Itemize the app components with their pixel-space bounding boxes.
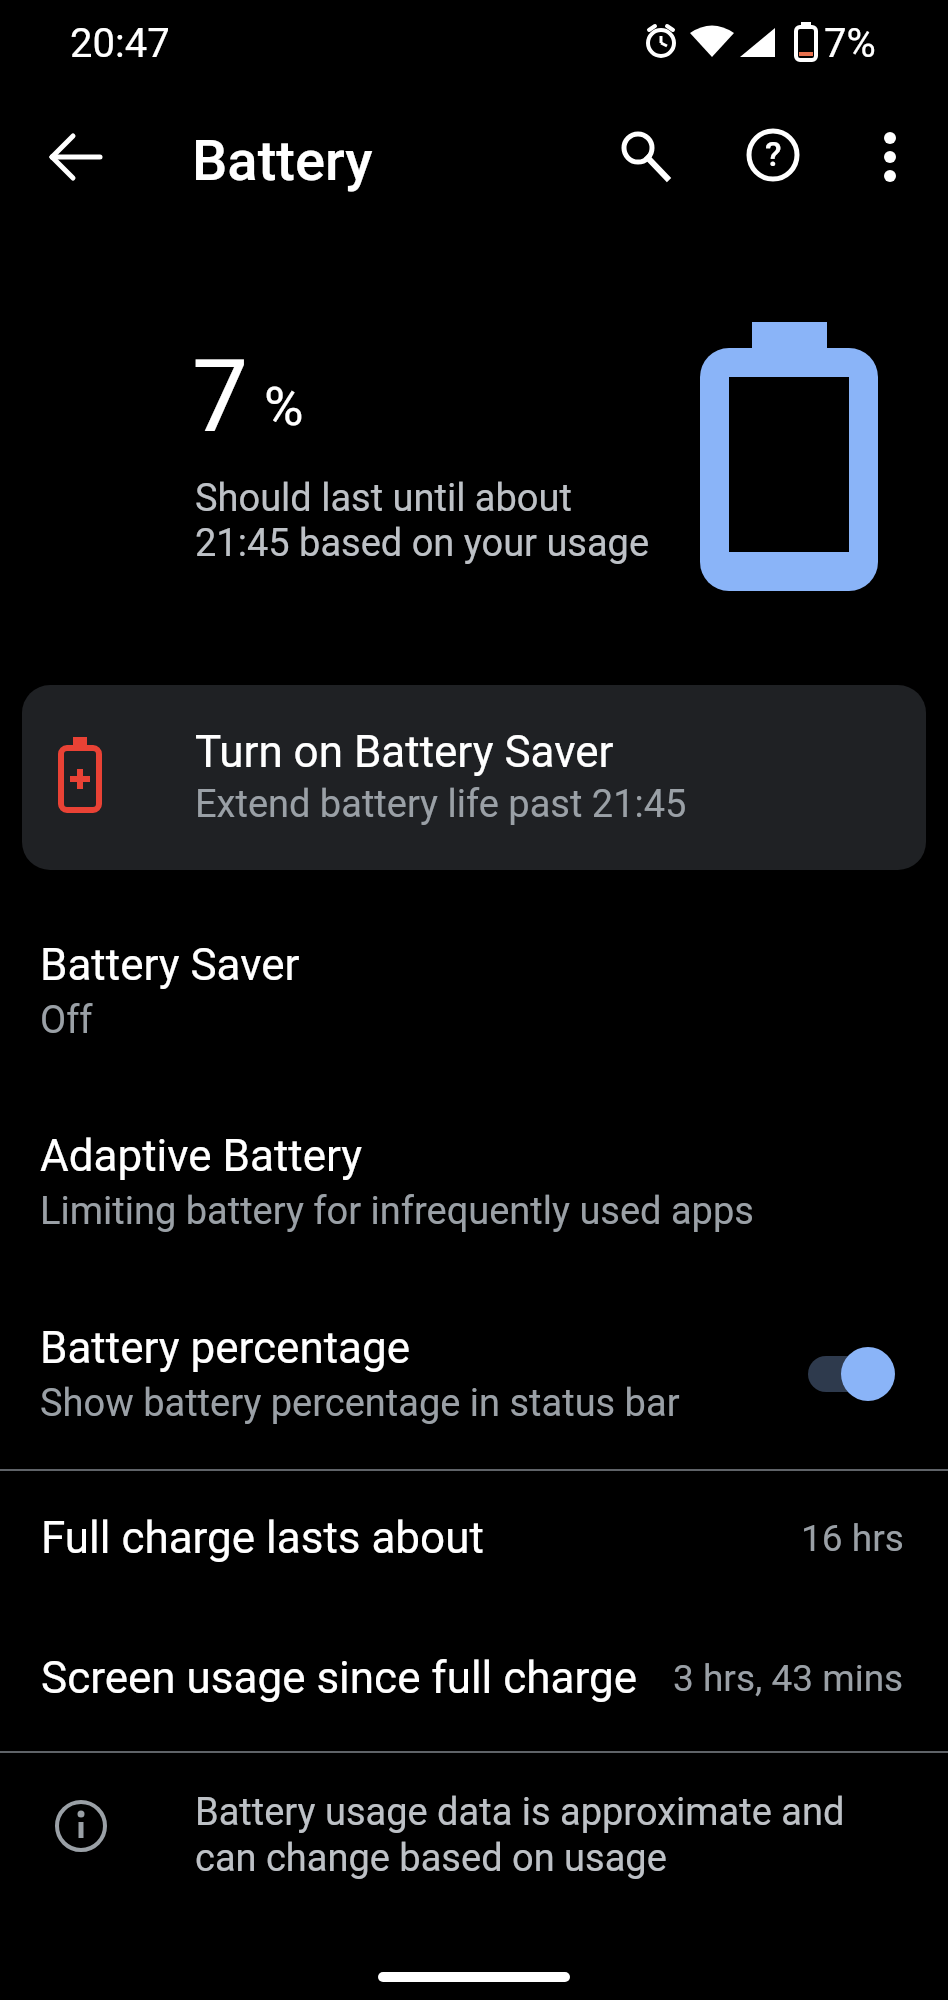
staticText: Limiting battery for infrequently used a… bbox=[40, 1189, 754, 1234]
staticText: 16 hrs bbox=[801, 1517, 904, 1560]
button[interactable] bbox=[858, 125, 922, 189]
staticText: Battery percentage bbox=[40, 1322, 411, 1374]
button[interactable] bbox=[40, 121, 112, 193]
button[interactable]: Turn on Battery Saver bbox=[22, 685, 926, 870]
staticText: % bbox=[264, 375, 304, 438]
button[interactable]: Battery Saver bbox=[0, 935, 948, 1047]
staticText: Full charge lasts about bbox=[41, 1512, 484, 1564]
staticText: Screen usage since full charge bbox=[41, 1652, 637, 1704]
staticText: Off bbox=[40, 998, 93, 1043]
staticText: Should last until about 21:45 based on y… bbox=[195, 476, 650, 566]
button[interactable]: Adaptive Battery bbox=[0, 1126, 948, 1238]
staticText: Turn on Battery Saver bbox=[195, 726, 614, 778]
staticText: Battery bbox=[192, 128, 373, 194]
staticText: 7 bbox=[192, 338, 249, 455]
button[interactable]: Screen usage since full charge bbox=[0, 1640, 948, 1716]
button[interactable]: Battery percentage bbox=[0, 1318, 948, 1430]
staticText: Battery usage data is approximate and ca… bbox=[195, 1790, 845, 1880]
button[interactable] bbox=[808, 1347, 895, 1401]
staticText: 7% bbox=[824, 20, 876, 67]
button[interactable]: ? bbox=[741, 123, 805, 187]
staticText: Extend battery life past 21:45 bbox=[195, 782, 687, 827]
staticText: Battery Saver bbox=[40, 939, 300, 991]
staticText: Adaptive Battery bbox=[40, 1130, 363, 1182]
staticText: 20:47 bbox=[70, 20, 170, 67]
staticText: ? bbox=[765, 134, 782, 174]
button[interactable] bbox=[606, 116, 670, 180]
staticText: Show battery percentage in status bar bbox=[40, 1381, 680, 1426]
button[interactable]: Full charge lasts about bbox=[0, 1500, 948, 1576]
staticText: 3 hrs, 43 mins bbox=[673, 1657, 904, 1700]
